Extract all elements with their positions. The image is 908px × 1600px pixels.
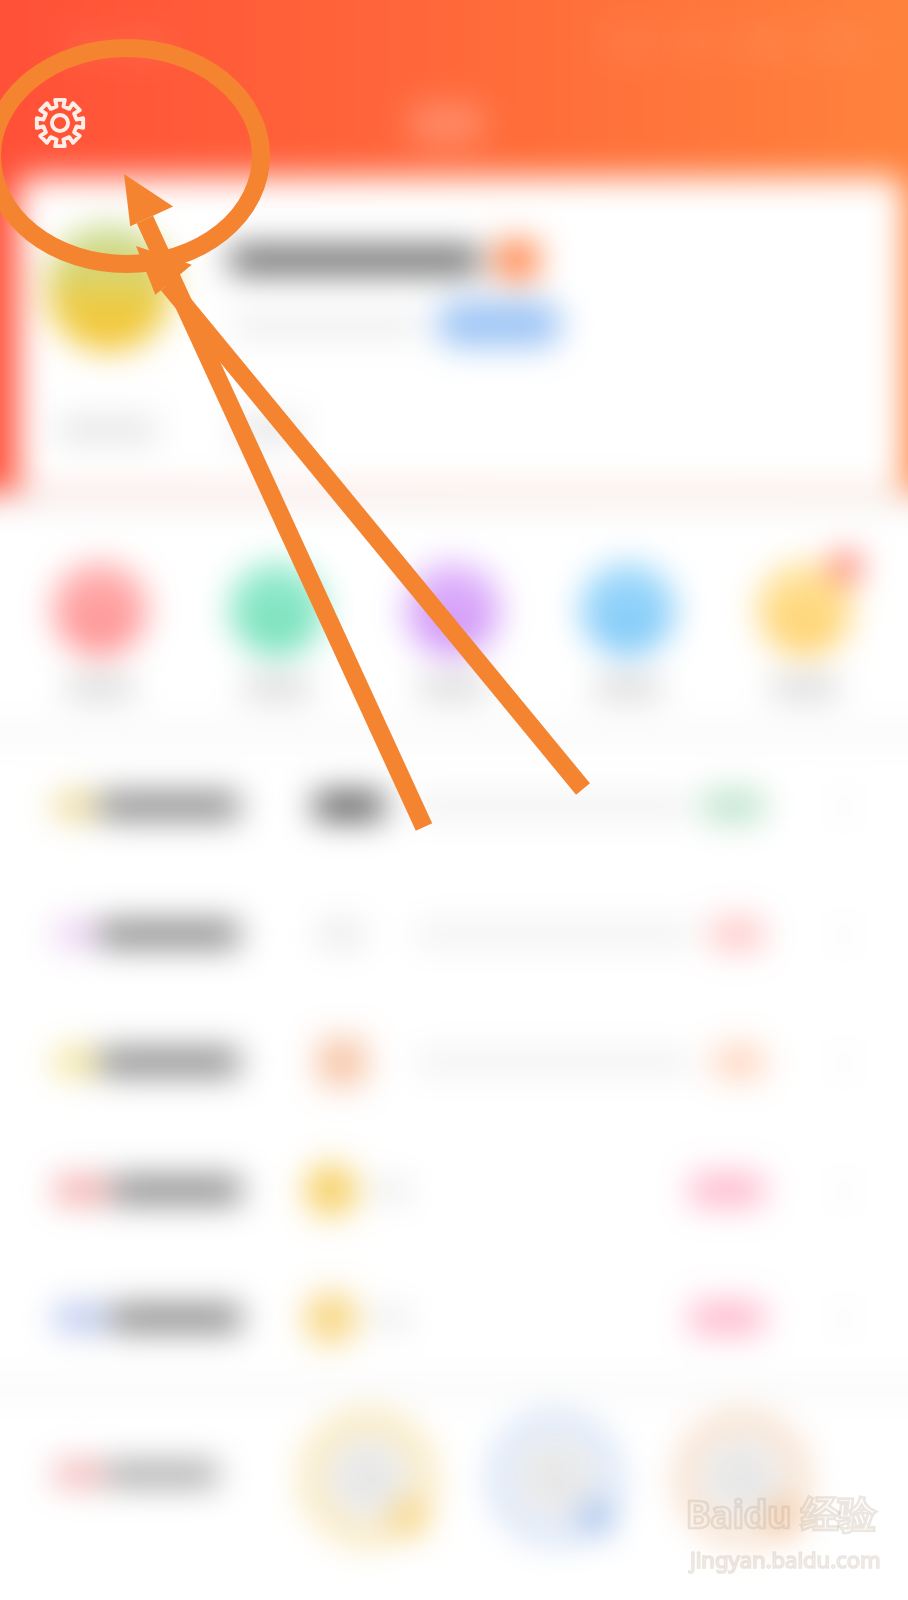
- button[interactable]: [0, 742, 908, 870]
- staticText: HD: [70, 32, 102, 61]
- button[interactable]: [0, 870, 908, 998]
- button[interactable]: [436, 301, 562, 347]
- button[interactable]: [0, 998, 908, 1126]
- button[interactable]: Member card: [485, 1408, 625, 1548]
- button[interactable]: Shortcut: [373, 512, 533, 712]
- button[interactable]: [0, 1126, 908, 1254]
- button[interactable]: Shortcut: [548, 512, 708, 712]
- button[interactable]: Shortcut: [197, 512, 357, 712]
- button[interactable]: Settings: [34, 97, 86, 149]
- button[interactable]: [0, 1254, 908, 1382]
- button[interactable]: Avatar: [46, 225, 172, 351]
- button[interactable]: Shortcut: [725, 512, 885, 712]
- button[interactable]: Shortcut: [20, 512, 180, 712]
- staticText: jingyan.baidu.com: [690, 1544, 908, 1574]
- staticText: Baidu 经验: [686, 1488, 908, 1539]
- button[interactable]: Member card: [298, 1408, 438, 1548]
- button[interactable]: Member card: [672, 1408, 812, 1548]
- button[interactable]: [234, 420, 300, 440]
- staticText: Baidu 经验: [686, 1488, 908, 1539]
